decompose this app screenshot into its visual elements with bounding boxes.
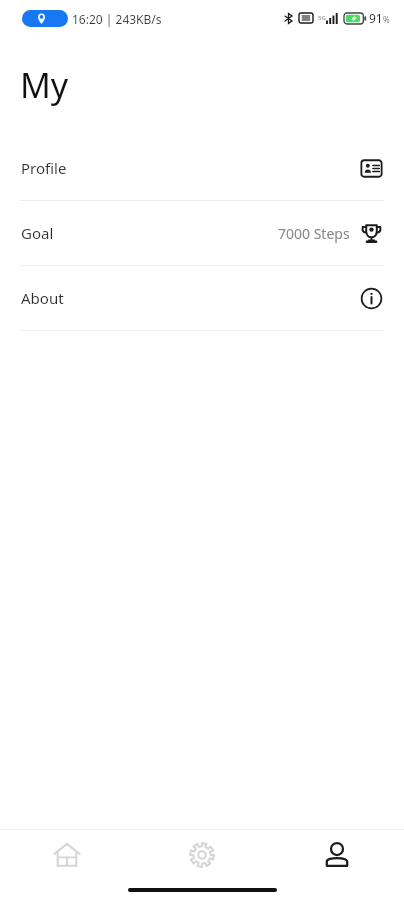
staticText: 7000 Steps: [278, 224, 350, 243]
other: Goal: [360, 222, 383, 245]
button[interactable]: Profile: [0, 136, 404, 200]
staticText: Goal: [21, 223, 54, 243]
button[interactable]: Home: [0, 830, 134, 880]
staticText: About: [21, 288, 64, 308]
button[interactable]: Settings: [134, 830, 269, 880]
staticText: 16:20 | 243KB/s: [72, 11, 162, 27]
button[interactable]: Profile: [269, 830, 404, 880]
button[interactable]: About: [0, 266, 404, 330]
button[interactable]: Goal: [0, 201, 404, 265]
staticText: Profile: [21, 158, 67, 178]
staticText: My: [20, 62, 69, 108]
other: Profile: [360, 157, 383, 180]
staticText: %: [383, 14, 390, 25]
staticText: 5G: [318, 14, 326, 22]
other: About: [360, 287, 383, 310]
staticText: 91: [369, 10, 383, 26]
